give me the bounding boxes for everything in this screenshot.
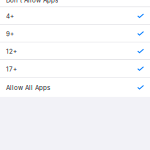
staticText: 12+ [6,48,17,55]
staticText: 9+ [6,30,14,38]
staticText: 4+ [6,13,14,20]
button[interactable]: Allow All Apps [0,78,150,97]
button[interactable]: 12+ [0,42,150,59]
staticText: 17+ [6,65,17,73]
button[interactable]: Don't Allow Apps [0,0,150,7]
staticText: Allow All Apps [6,84,50,92]
button[interactable]: 9+ [0,25,150,42]
button[interactable]: 17+ [0,60,150,77]
button[interactable]: 4+ [0,7,150,24]
staticText: Don't Allow Apps [6,0,58,4]
